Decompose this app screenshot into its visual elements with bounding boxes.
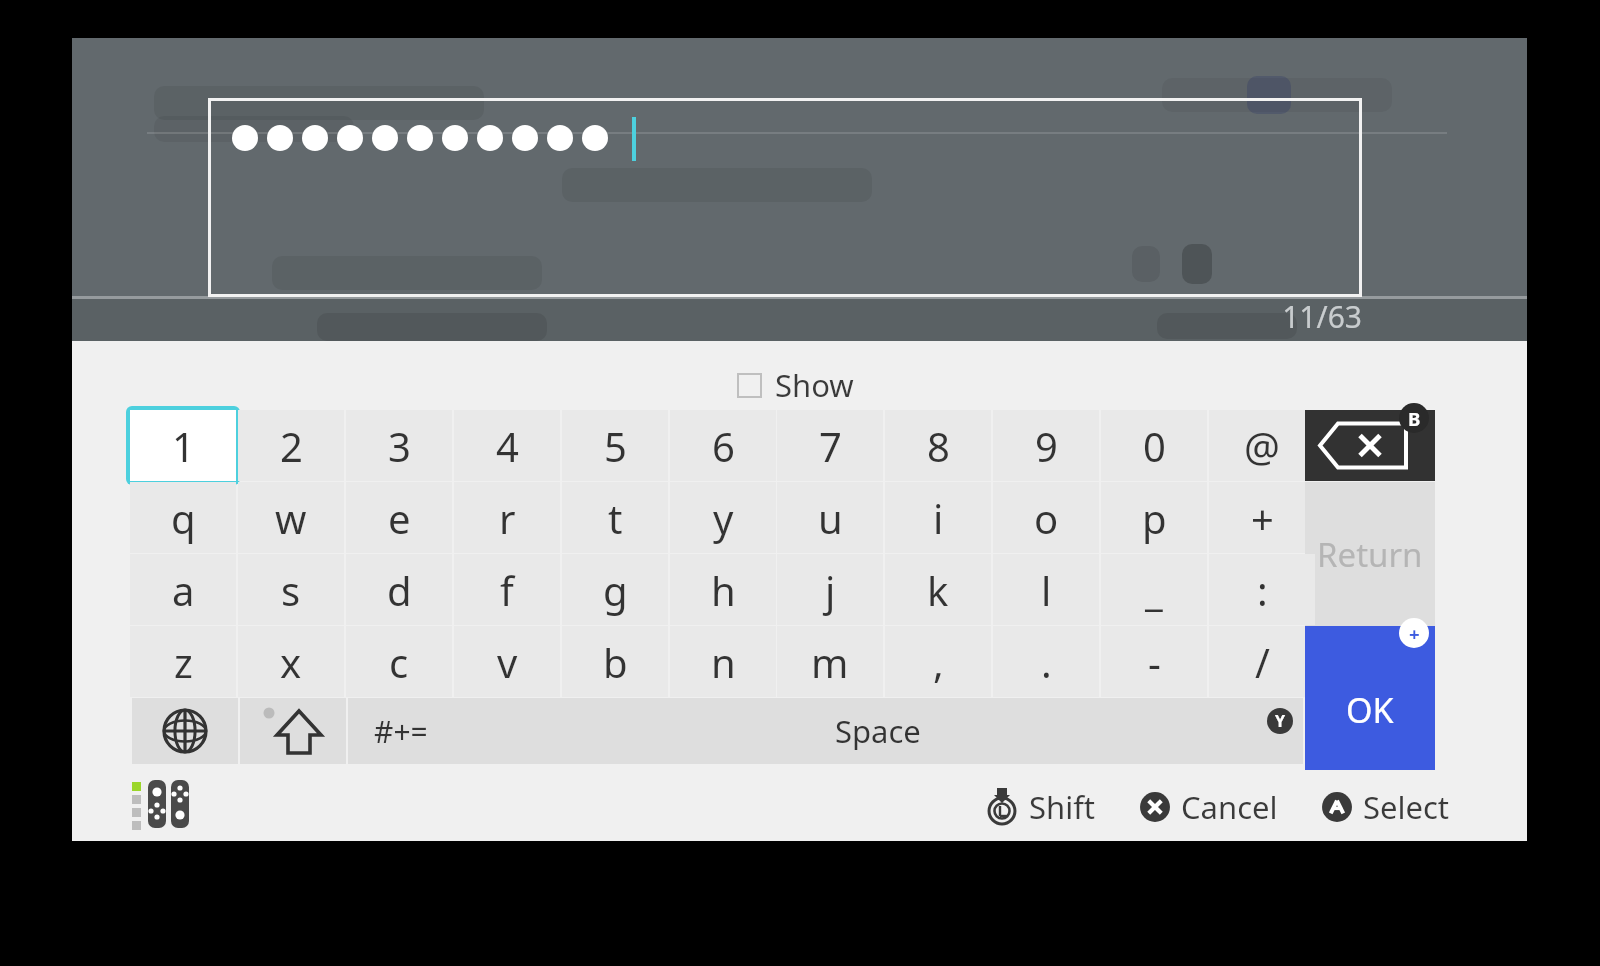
staticText: m	[811, 635, 849, 689]
staticText: l	[1041, 563, 1052, 617]
staticText: b	[603, 635, 628, 689]
button[interactable]: _	[1101, 554, 1207, 625]
button[interactable]: z	[130, 626, 236, 697]
staticText: Shift	[1029, 786, 1096, 828]
button[interactable]: Return	[1305, 482, 1435, 626]
button[interactable]: :	[1209, 554, 1315, 625]
button[interactable]: 1	[126, 406, 240, 485]
button[interactable]: 7	[777, 410, 883, 481]
button[interactable]: 4	[454, 410, 560, 481]
staticText: k	[927, 563, 949, 617]
staticText: 6	[712, 419, 735, 473]
button[interactable]: w	[238, 482, 344, 553]
staticText: 4	[496, 419, 519, 473]
button[interactable]: 3	[346, 410, 452, 481]
button[interactable]: p	[1101, 482, 1207, 553]
button[interactable]: o	[993, 482, 1099, 553]
staticText: a	[172, 563, 195, 617]
staticText: B	[1408, 406, 1421, 431]
button[interactable]: OK	[1305, 626, 1435, 770]
staticText: @	[1244, 419, 1280, 473]
button[interactable]: x	[238, 626, 344, 697]
button[interactable]: r	[454, 482, 560, 553]
button[interactable]: Language	[132, 698, 238, 764]
button[interactable]: n	[670, 626, 776, 697]
staticText: -	[1148, 635, 1161, 689]
button[interactable]: h	[670, 554, 776, 625]
button[interactable]: ,	[885, 626, 991, 697]
staticText: Select	[1363, 786, 1450, 828]
button[interactable]: e	[346, 482, 452, 553]
button[interactable]: d	[346, 554, 452, 625]
button[interactable]: s	[238, 554, 344, 625]
staticText: c	[389, 635, 409, 689]
staticText: t	[608, 491, 623, 545]
staticText: g	[603, 563, 628, 617]
button[interactable]: .	[993, 626, 1099, 697]
staticText: r	[499, 491, 516, 545]
button[interactable]: k	[885, 554, 991, 625]
staticText: 3	[388, 419, 411, 473]
staticText: j	[825, 563, 836, 617]
button[interactable]: Symbols	[348, 698, 454, 764]
staticText: .	[1041, 635, 1052, 689]
staticText: 2	[280, 419, 303, 473]
staticText: f	[500, 563, 514, 617]
button[interactable]: 5	[562, 410, 668, 481]
staticText: 0	[1143, 419, 1166, 473]
button[interactable]: Cancel	[1134, 782, 1282, 832]
button[interactable]: Shift	[980, 782, 1100, 832]
staticText: _	[1145, 563, 1163, 617]
button[interactable]: y	[670, 482, 776, 553]
staticText: 1	[172, 419, 195, 473]
button[interactable]: Shift	[240, 698, 346, 764]
button[interactable]: i	[885, 482, 991, 553]
button[interactable]: -	[1101, 626, 1207, 697]
staticText: y	[713, 491, 734, 545]
button[interactable]: c	[346, 626, 452, 697]
staticText: #+=	[374, 711, 428, 752]
staticText: w	[275, 491, 307, 545]
button[interactable]: a	[130, 554, 236, 625]
button[interactable]: 8	[885, 410, 991, 481]
staticText: z	[174, 635, 193, 689]
staticText: u	[818, 491, 843, 545]
staticText: Return	[1317, 532, 1423, 577]
button[interactable]: /	[1209, 626, 1315, 697]
staticText: p	[1142, 491, 1167, 545]
button[interactable]: m	[777, 626, 883, 697]
staticText: Y	[1275, 710, 1286, 732]
staticText: 7	[819, 419, 842, 473]
button[interactable]: 6	[670, 410, 776, 481]
staticText: +	[1251, 491, 1274, 545]
button[interactable]: 0	[1101, 410, 1207, 481]
button[interactable]: Backspace	[1305, 410, 1435, 481]
button[interactable]: j	[777, 554, 883, 625]
button[interactable]: 2	[238, 410, 344, 481]
button[interactable]: u	[777, 482, 883, 553]
button[interactable]: f	[454, 554, 560, 625]
staticText: OK	[1346, 687, 1394, 733]
button[interactable]: l	[993, 554, 1099, 625]
staticText: Space	[835, 710, 921, 752]
staticText: h	[711, 563, 736, 617]
button[interactable]: Show	[733, 360, 858, 410]
button[interactable]: @	[1209, 410, 1315, 481]
button[interactable]: q	[130, 482, 236, 553]
other: Controller	[130, 778, 190, 830]
button[interactable]: g	[562, 554, 668, 625]
button[interactable]: 9	[993, 410, 1099, 481]
button[interactable]: Space	[452, 698, 1303, 764]
staticText: /	[1255, 635, 1270, 689]
button[interactable]: +	[1209, 482, 1315, 553]
button[interactable]: Select	[1316, 782, 1454, 832]
staticText: 9	[1035, 419, 1058, 473]
staticText: n	[711, 635, 736, 689]
staticText: d	[387, 563, 412, 617]
staticText: o	[1034, 491, 1059, 545]
button[interactable]: b	[562, 626, 668, 697]
button[interactable]: t	[562, 482, 668, 553]
button[interactable]: v	[454, 626, 560, 697]
staticText: ,	[933, 635, 944, 689]
staticText: i	[933, 491, 944, 545]
